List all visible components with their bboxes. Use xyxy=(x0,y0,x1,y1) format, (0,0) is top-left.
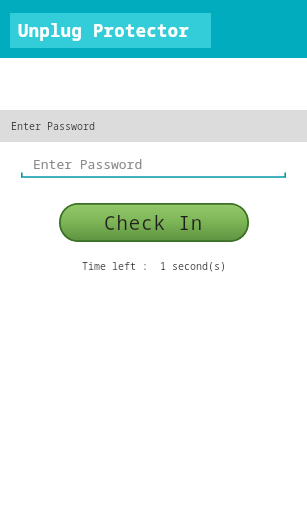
staticText: Enter Password xyxy=(11,119,95,133)
staticText: Enter Password xyxy=(33,155,143,173)
button[interactable]: Check In xyxy=(59,203,249,242)
button[interactable]: Unplug Protector xyxy=(10,13,211,48)
staticText: Time left : 1 second(s) xyxy=(82,259,226,273)
button[interactable]: Enter Password xyxy=(0,150,307,182)
staticText: Unplug Protector xyxy=(18,19,190,42)
staticText: Check In xyxy=(104,210,204,236)
